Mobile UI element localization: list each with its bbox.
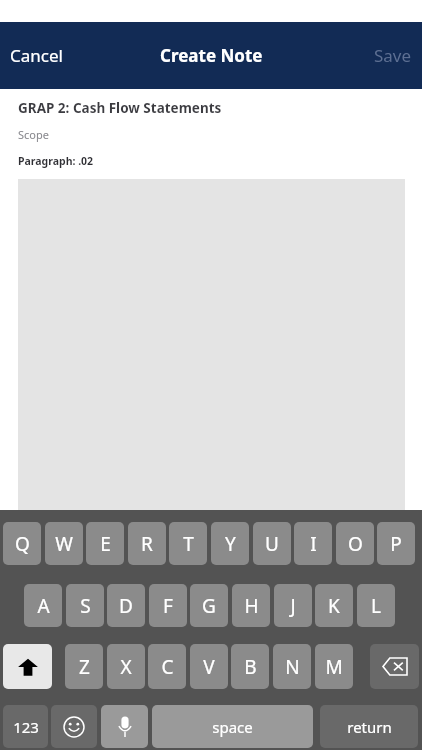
staticText: G <box>202 593 216 619</box>
button[interactable]: P <box>377 522 415 565</box>
button[interactable]: Backspace <box>370 644 419 689</box>
button[interactable]: A <box>24 584 62 627</box>
staticText: W <box>55 531 73 557</box>
staticText: R <box>141 531 153 557</box>
staticText: Q <box>15 531 30 557</box>
button[interactable]: Y <box>211 522 249 565</box>
button[interactable]: M <box>315 644 353 689</box>
button[interactable]: J <box>274 584 312 627</box>
staticText: J <box>290 593 296 619</box>
button[interactable]: T <box>169 522 207 565</box>
staticText: Create Note <box>160 44 263 67</box>
button[interactable]: I <box>294 522 332 565</box>
button[interactable]: C <box>148 644 186 689</box>
staticText: S <box>80 593 91 619</box>
staticText: X <box>120 654 132 680</box>
staticText: B <box>244 654 257 680</box>
staticText: Paragraph: .02 <box>18 154 94 168</box>
button[interactable]: Cancel <box>0 34 73 77</box>
staticText: Y <box>225 531 236 557</box>
button[interactable]: space <box>152 705 313 748</box>
button[interactable]: Emoji <box>51 705 97 748</box>
button[interactable]: N <box>273 644 311 689</box>
button[interactable]: Q <box>3 522 41 565</box>
staticText: U <box>265 531 279 557</box>
button[interactable]: Dictation <box>101 705 148 748</box>
button[interactable]: Shift <box>3 644 52 689</box>
staticText: F <box>163 593 173 619</box>
staticText: K <box>328 593 340 619</box>
button[interactable]: return <box>320 705 418 748</box>
staticText: Save <box>374 44 412 67</box>
button[interactable]: L <box>357 584 395 627</box>
button[interactable]: F <box>149 584 187 627</box>
staticText: N <box>285 654 300 680</box>
staticText: E <box>100 531 111 557</box>
button[interactable]: X <box>107 644 145 689</box>
staticText: Cancel <box>10 44 63 67</box>
button[interactable]: K <box>315 584 353 627</box>
staticText: I <box>310 531 317 557</box>
staticText: M <box>325 654 343 680</box>
button[interactable]: Z <box>65 644 103 689</box>
button[interactable]: W <box>45 522 83 565</box>
staticText: C <box>161 654 174 680</box>
button[interactable]: S <box>66 584 104 627</box>
button[interactable]: U <box>253 522 291 565</box>
staticText: V <box>203 654 215 680</box>
button[interactable]: D <box>107 584 145 627</box>
staticText: H <box>244 593 259 619</box>
staticText: T <box>183 531 194 557</box>
button[interactable]: O <box>336 522 374 565</box>
button[interactable]: V <box>190 644 228 689</box>
staticText: A <box>37 593 50 619</box>
staticText: Scope <box>18 127 49 142</box>
button[interactable]: B <box>231 644 269 689</box>
staticText: L <box>371 593 381 619</box>
button[interactable]: R <box>128 522 166 565</box>
staticText: O <box>348 531 363 557</box>
staticText: 123 <box>13 717 39 737</box>
staticText: D <box>119 593 133 619</box>
button[interactable]: 123 <box>3 705 48 748</box>
staticText: P <box>390 531 402 557</box>
button[interactable]: G <box>190 584 228 627</box>
staticText: GRAP 2: Cash Flow Statements <box>18 99 222 117</box>
button[interactable]: E <box>86 522 124 565</box>
button[interactable]: Save <box>364 34 422 77</box>
staticText: Z <box>79 654 90 680</box>
staticText: space <box>212 717 253 737</box>
button[interactable]: H <box>232 584 270 627</box>
staticText: return <box>347 717 392 737</box>
